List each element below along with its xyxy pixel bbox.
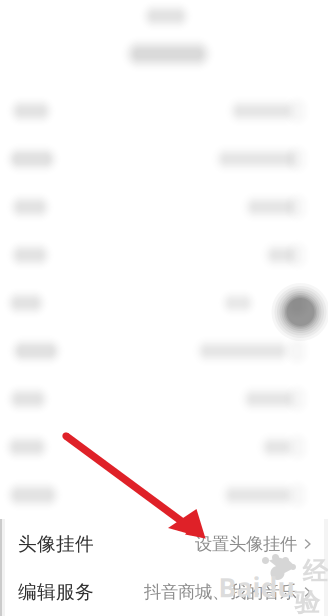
staticText: Baidu [218, 569, 294, 605]
button[interactable]: 头像挂件 [0, 520, 328, 568]
staticText: 设置头像挂件 [195, 533, 297, 555]
staticText: 抖音商城、我的音乐 [144, 581, 297, 603]
staticText: 经验 [294, 556, 327, 616]
staticText: 编辑服务 [18, 580, 94, 603]
button[interactable]: 编辑服务 [0, 568, 328, 616]
staticText: 头像挂件 [18, 532, 94, 555]
